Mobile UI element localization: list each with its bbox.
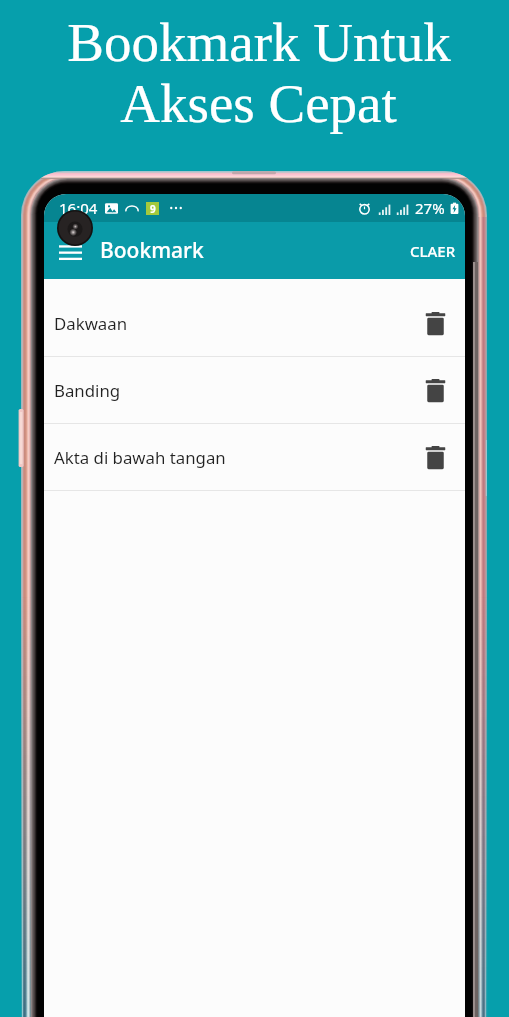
button[interactable]: Delete — [413, 301, 457, 345]
button[interactable]: Menu — [48, 229, 92, 273]
button[interactable]: Delete — [413, 368, 457, 412]
button[interactable]: CLAER — [395, 229, 465, 273]
staticText: Akses Cepat — [120, 73, 397, 134]
staticText: Bookmark Untuk — [67, 12, 451, 73]
staticText: Dakwaan — [54, 312, 128, 335]
staticText: 16:04 — [59, 198, 98, 218]
staticText: Banding — [54, 379, 121, 402]
staticText: Akta di bawah tangan — [54, 446, 226, 469]
button[interactable]: Delete — [413, 435, 457, 479]
staticText: 27% — [415, 198, 445, 218]
button[interactable]: Banding — [44, 357, 465, 423]
staticText: 9 — [150, 202, 156, 215]
button[interactable]: Akta di bawah tangan — [44, 424, 465, 490]
staticText: Bookmark — [100, 236, 204, 265]
staticText: CLAER — [410, 241, 456, 261]
button[interactable]: Dakwaan — [44, 290, 465, 356]
